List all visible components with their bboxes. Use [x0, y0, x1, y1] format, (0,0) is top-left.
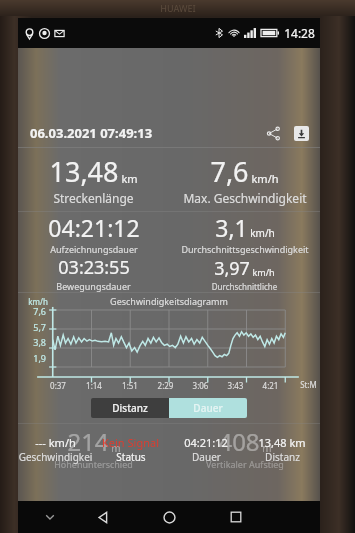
- staticText: Status: [116, 450, 146, 464]
- staticText: km/h: [250, 226, 275, 240]
- staticText: 1:14: [76, 380, 112, 391]
- button[interactable]: Share: [260, 120, 286, 146]
- staticText: 1:51: [112, 380, 148, 391]
- staticText: Dauer: [192, 450, 221, 464]
- staticText: 3,1: [215, 212, 248, 243]
- button[interactable]: Export: [288, 120, 314, 146]
- staticText: 13,48: [49, 153, 119, 190]
- staticText: 3:43: [218, 380, 253, 391]
- staticText: Durchschnittsgeschwindigkeit: [181, 243, 309, 255]
- staticText: km/h: [251, 171, 279, 186]
- staticText: Max. Geschwindigkeit: [183, 190, 307, 206]
- staticText: km/h: [28, 296, 48, 307]
- staticText: 7,6: [20, 305, 46, 317]
- staticText: 3,97: [214, 256, 250, 281]
- staticText: km: [121, 171, 138, 186]
- staticText: 408: [218, 425, 260, 458]
- staticText: Distanz: [112, 401, 148, 415]
- staticText: Kein Signal: [102, 435, 159, 450]
- staticText: 3,8: [20, 336, 46, 348]
- button[interactable]: Home: [154, 502, 184, 532]
- staticText: Streckenlänge: [53, 190, 134, 206]
- staticText: 03:23:55: [58, 255, 130, 280]
- staticText: HUAWEI: [160, 2, 196, 14]
- staticText: Bewegungsdauer: [56, 280, 131, 292]
- button[interactable]: Distanz: [91, 398, 169, 418]
- button[interactable]: Dauer: [169, 398, 247, 418]
- staticText: 214: [67, 425, 109, 458]
- staticText: 0:37: [40, 380, 76, 391]
- staticText: Geschwindigkeitsdiagramm: [110, 295, 228, 307]
- staticText: Höhenunterschied: [54, 458, 133, 470]
- staticText: 7,6: [210, 153, 249, 190]
- staticText: 04:21:12: [184, 435, 228, 450]
- staticText: 1,9: [20, 352, 46, 364]
- staticText: Aufzeichnungsdauer: [50, 243, 138, 255]
- staticText: --- km/h: [35, 435, 76, 450]
- staticText: Dauer: [193, 401, 223, 415]
- staticText: 5,7: [20, 321, 46, 333]
- staticText: Durchschnittliche Bewegungsgeschwin…: [169, 281, 320, 292]
- button[interactable]: Back: [88, 502, 118, 532]
- staticText: 13,48 km: [258, 435, 306, 450]
- staticText: m: [262, 441, 272, 455]
- staticText: 14:28: [284, 25, 315, 41]
- staticText: Vertikaler Aufstieg: [206, 458, 284, 470]
- staticText: 3:06: [183, 380, 218, 391]
- staticText: St:M: [300, 379, 317, 390]
- staticText: Distanz: [265, 450, 300, 464]
- staticText: km/h: [252, 266, 275, 278]
- staticText: Geschwindigkeit: [18, 450, 93, 464]
- staticText: 4:21: [253, 380, 288, 391]
- button[interactable]: Hide keyboard: [40, 507, 60, 527]
- button[interactable]: Recent apps: [221, 502, 251, 532]
- staticText: 06.03.2021 07:49:13: [30, 124, 260, 142]
- staticText: 04:21:12: [48, 212, 140, 243]
- staticText: m: [111, 441, 121, 455]
- staticText: 2:29: [148, 380, 183, 391]
